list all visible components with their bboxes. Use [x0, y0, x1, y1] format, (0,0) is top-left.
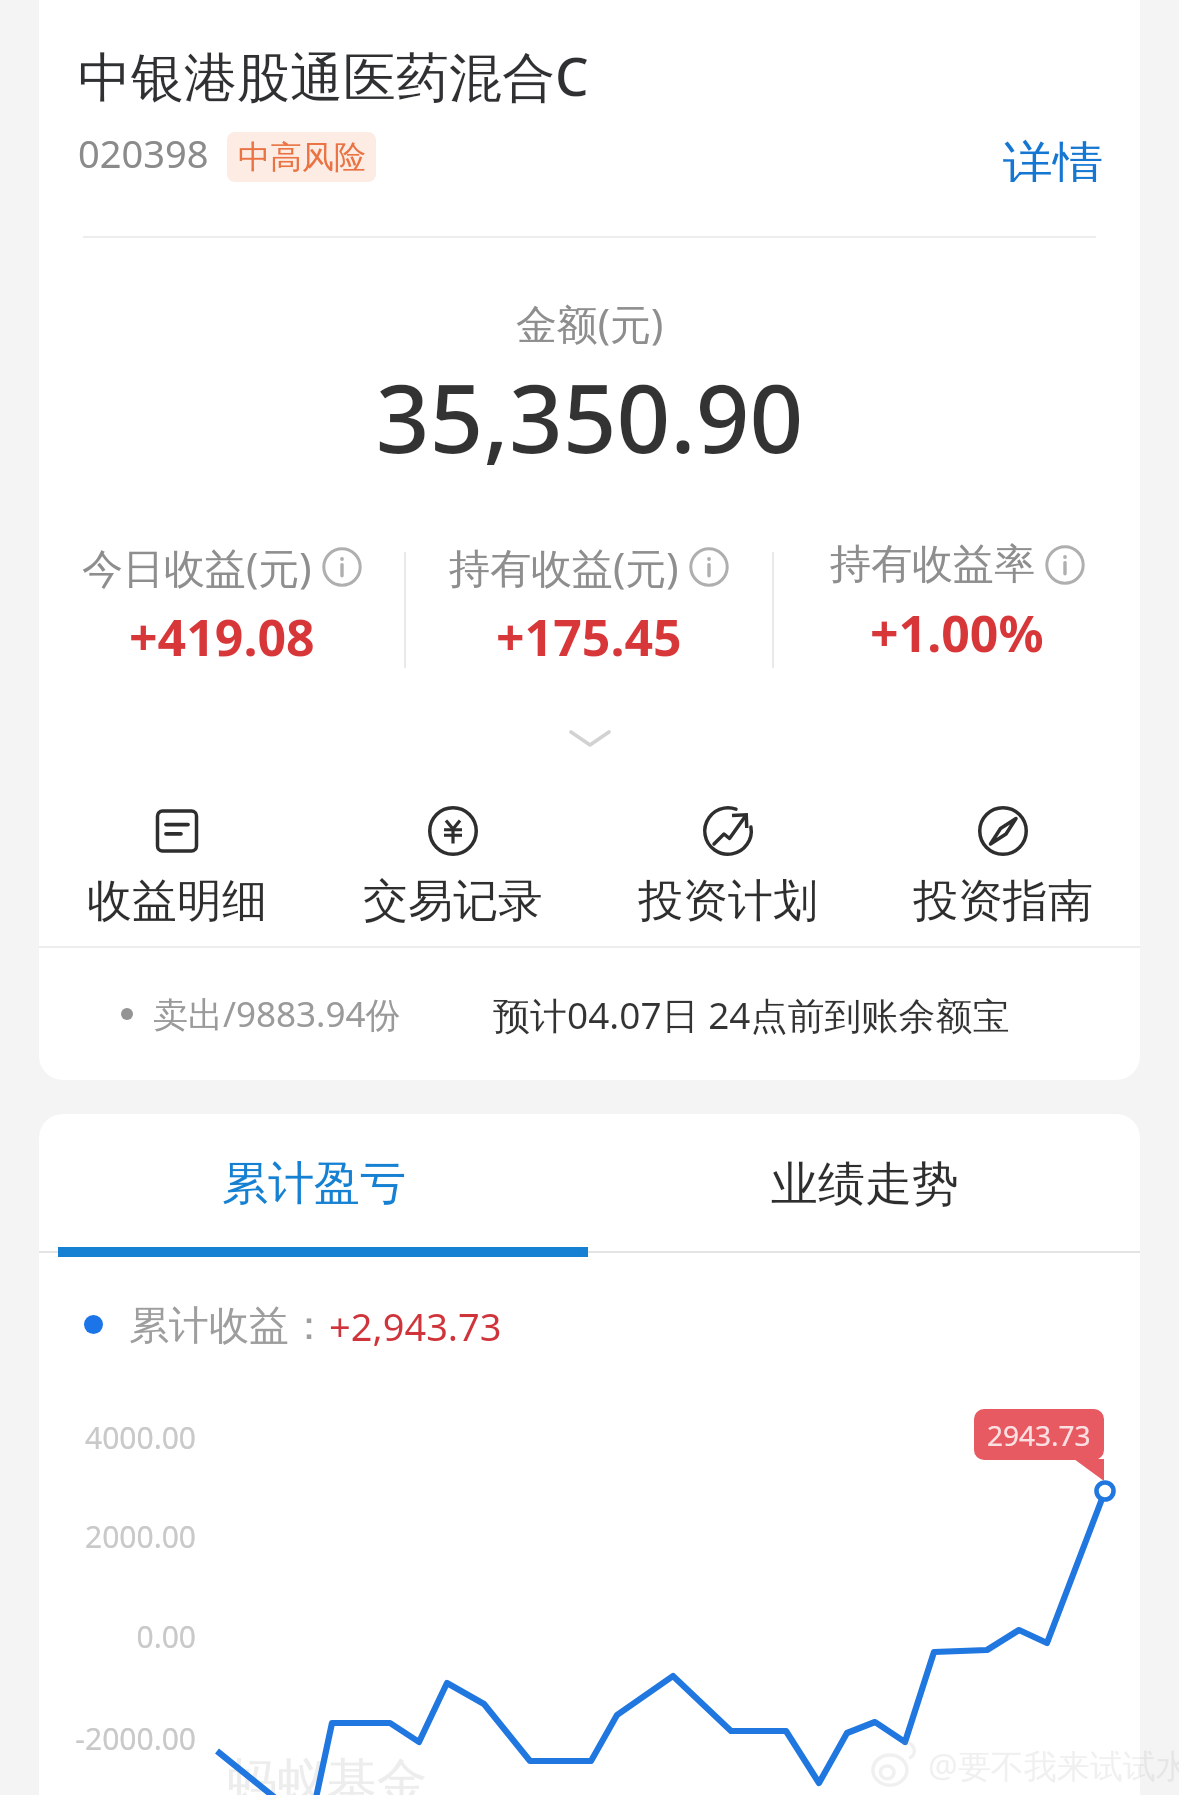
other: Info about 持有收益率	[1045, 545, 1085, 585]
staticText: 中高风险	[238, 137, 366, 177]
staticText: 卖出/9883.94份	[153, 990, 401, 1038]
button[interactable]: 持有收益(元)	[406, 526, 772, 671]
button[interactable]: 投资指南	[865, 800, 1140, 930]
staticText: 0.00	[39, 1616, 196, 1657]
staticText: 预计04.07日 24点前到账余额宝	[493, 989, 1010, 1040]
staticText: 4000.00	[39, 1417, 196, 1458]
button[interactable]: 详情	[993, 120, 1103, 186]
staticText: 今日收益(元)	[82, 539, 312, 595]
staticText: -2000.00	[39, 1718, 196, 1759]
staticText: +419.08	[129, 603, 315, 671]
staticText: 交易记录	[363, 873, 543, 930]
staticText: 蚂蚁基金	[227, 1751, 427, 1795]
staticText: +2,943.73	[329, 1300, 502, 1348]
staticText: +175.45	[496, 603, 682, 671]
staticText: 中银港股通医药混合C	[78, 39, 589, 111]
staticText: 35,350.90	[39, 353, 1140, 481]
staticText: 2000.00	[39, 1516, 196, 1557]
staticText: 累计收益：	[129, 1300, 329, 1348]
button[interactable]: 投资计划	[590, 800, 865, 930]
staticText: 累计盈亏	[222, 1155, 406, 1213]
staticText: 投资指南	[913, 873, 1093, 930]
other: Info about 今日收益(元)	[322, 547, 362, 587]
staticText: @要不我来试试水	[928, 1743, 1179, 1788]
staticText: 2943.73	[987, 1416, 1091, 1454]
button[interactable]: 持有收益率	[774, 526, 1140, 667]
staticText: 详情	[1003, 134, 1103, 182]
button[interactable]: 交易记录	[315, 800, 590, 930]
button[interactable]: 收益明细	[39, 800, 315, 930]
button[interactable]: 今日收益(元)	[39, 526, 404, 671]
staticText: 020398	[78, 127, 209, 179]
staticText: 持有收益率	[830, 539, 1035, 591]
other: Info about 持有收益(元)	[689, 547, 729, 587]
button[interactable]: 卖出/9883.94份	[39, 948, 1140, 1080]
staticText: +1.00%	[870, 599, 1044, 667]
staticText: 投资计划	[638, 873, 818, 930]
button[interactable]: 累计盈亏	[39, 1114, 589, 1254]
staticText: 业绩走势	[771, 1155, 959, 1214]
staticText: 收益明细	[87, 873, 267, 930]
staticText: 持有收益(元)	[449, 539, 679, 595]
staticText: 金额(元)	[39, 295, 1140, 351]
button[interactable]: 业绩走势	[589, 1114, 1140, 1254]
